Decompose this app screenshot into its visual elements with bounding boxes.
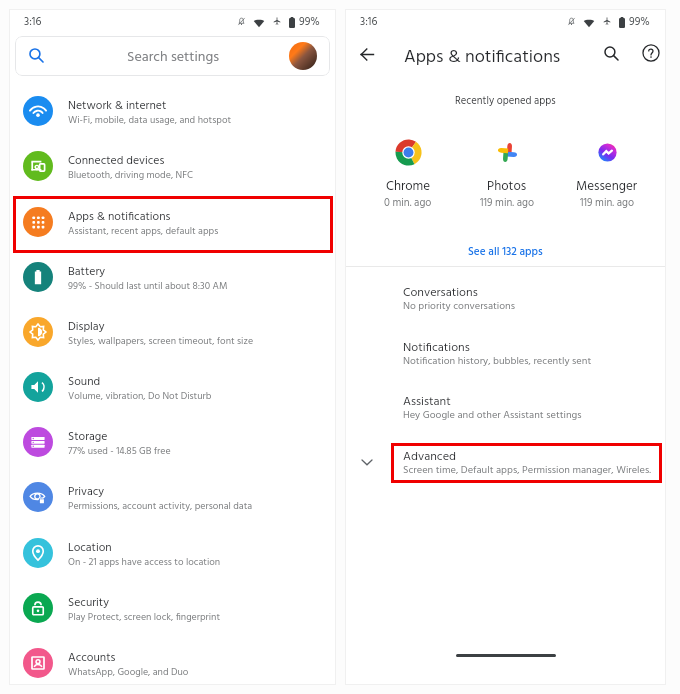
staticText: On - 21 apps have access to location (68, 555, 221, 571)
staticText: Wi-Fi, mobile, data usage, and hotspot (68, 113, 232, 129)
button[interactable]: Assistant (403, 392, 662, 429)
staticText: Advanced (403, 447, 457, 467)
staticText: 119 min. ago (480, 195, 534, 212)
button[interactable]: Messenger (559, 139, 655, 214)
button[interactable]: Notifications (403, 338, 662, 375)
staticText: Assistant, recent apps, default apps (68, 224, 219, 240)
staticText: Security (68, 594, 110, 613)
button[interactable]: Accounts (9, 635, 336, 690)
button[interactable]: Help (636, 38, 666, 68)
staticText: Apps & notifications (68, 208, 171, 227)
button[interactable]: Back (352, 39, 382, 69)
button[interactable]: Photos (459, 139, 555, 214)
button[interactable]: Battery (9, 249, 336, 304)
staticText: Connected devices (68, 152, 165, 171)
button[interactable]: Expand advanced (357, 452, 377, 472)
staticText: Battery (68, 263, 106, 282)
staticText: Hey Google and other Assistant settings (403, 407, 582, 424)
staticText: Conversations (403, 283, 478, 303)
staticText: Recently opened apps (455, 93, 556, 110)
staticText: No priority conversations (403, 298, 515, 315)
staticText: Volume, vibration, Do Not Disturb (68, 389, 212, 405)
staticText: Search settings (127, 46, 219, 69)
staticText: Display (68, 318, 105, 337)
staticText: Permissions, account activity, personal … (68, 499, 253, 515)
staticText: Styles, wallpapers, screen timeout, font… (68, 334, 254, 350)
button[interactable]: Advanced (403, 447, 662, 484)
button[interactable]: Location (9, 525, 336, 580)
staticText: 99% (629, 13, 650, 31)
staticText: See all 132 apps (468, 243, 543, 261)
staticText: 119 min. ago (580, 195, 634, 212)
button[interactable]: See all 132 apps (345, 243, 666, 261)
staticText: Accounts (68, 649, 116, 668)
button[interactable]: Apps & notifications (9, 194, 336, 249)
button[interactable]: Storage (9, 414, 336, 469)
staticText: Play Protect, screen lock, fingerprint (68, 610, 221, 626)
staticText: Sound (68, 373, 101, 392)
staticText: Messenger (576, 176, 638, 197)
button[interactable]: Search settings (15, 36, 330, 76)
button[interactable]: Security (9, 580, 336, 635)
staticText: Assistant (403, 392, 451, 412)
staticText: Storage (68, 428, 108, 447)
button[interactable]: Display (9, 304, 336, 359)
button[interactable]: Sound (9, 359, 336, 414)
button[interactable]: Chrome (360, 139, 456, 214)
staticText: WhatsApp, Google, and Duo (68, 665, 189, 681)
staticText: Apps & notifications (404, 43, 561, 72)
staticText: 3:16 (24, 13, 42, 31)
staticText: 0 min. ago (384, 195, 432, 212)
staticText: 77% used - 14.85 GB free (68, 444, 171, 460)
button[interactable]: Conversations (403, 283, 662, 320)
staticText: Bluetooth, driving mode, NFC (68, 168, 193, 184)
staticText: Chrome (386, 176, 431, 197)
staticText: Notification history, bubbles, recently … (403, 353, 592, 370)
button[interactable]: Connected devices (9, 138, 336, 193)
button[interactable]: Search (596, 38, 626, 68)
staticText: 99% - Should last until about 8:30 AM (68, 279, 228, 295)
staticText: Notifications (403, 338, 470, 358)
staticText: Screen time, Default apps, Permission ma… (403, 462, 651, 479)
staticText: Privacy (68, 483, 105, 502)
staticText: 3:16 (360, 13, 378, 31)
staticText: Network & internet (68, 97, 167, 116)
button[interactable]: Privacy (9, 469, 336, 524)
staticText: Location (68, 539, 112, 558)
button[interactable]: Network & internet (9, 83, 336, 138)
staticText: Photos (487, 176, 527, 197)
staticText: 99% (299, 13, 320, 31)
